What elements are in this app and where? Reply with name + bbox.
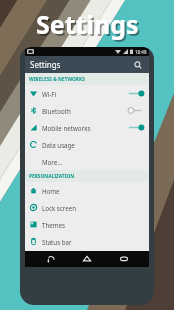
staticText: Data usage bbox=[42, 141, 75, 149]
button[interactable]: Data usage bbox=[25, 136, 149, 153]
staticText: Bluetooth bbox=[42, 107, 71, 115]
staticText: Settings bbox=[30, 59, 61, 70]
button[interactable]: Settings bbox=[25, 56, 149, 73]
staticText: PERSONALIZATION bbox=[29, 173, 75, 180]
button[interactable]: Search bbox=[132, 59, 144, 71]
button[interactable]: Bluetooth bbox=[25, 102, 149, 119]
button[interactable]: Recents bbox=[113, 251, 135, 267]
button[interactable]: Themes bbox=[25, 216, 149, 233]
staticText: Home bbox=[42, 187, 60, 195]
staticText: Status bar bbox=[42, 238, 72, 246]
button[interactable]: Mobile networks bbox=[25, 119, 149, 136]
button[interactable]: More... bbox=[25, 153, 149, 170]
staticText: 18:48 bbox=[135, 49, 147, 55]
staticText: Mobile networks bbox=[42, 124, 91, 132]
staticText: Wi-Fi bbox=[42, 90, 57, 98]
staticText: Settings bbox=[36, 7, 139, 41]
button[interactable]: Wi-Fi bbox=[25, 85, 149, 102]
button[interactable]: Home bbox=[25, 182, 149, 199]
button[interactable]: Back bbox=[40, 251, 62, 267]
button[interactable]: Home bbox=[76, 251, 98, 267]
button[interactable]: Lock screen bbox=[25, 199, 149, 216]
staticText: Lock screen bbox=[42, 204, 77, 212]
staticText: Themes bbox=[42, 221, 65, 229]
staticText: Settings bbox=[38, 9, 141, 43]
button[interactable]: Status bar bbox=[25, 233, 149, 250]
staticText: WIRELESS & NETWORKS bbox=[29, 76, 85, 83]
staticText: More... bbox=[42, 158, 63, 166]
